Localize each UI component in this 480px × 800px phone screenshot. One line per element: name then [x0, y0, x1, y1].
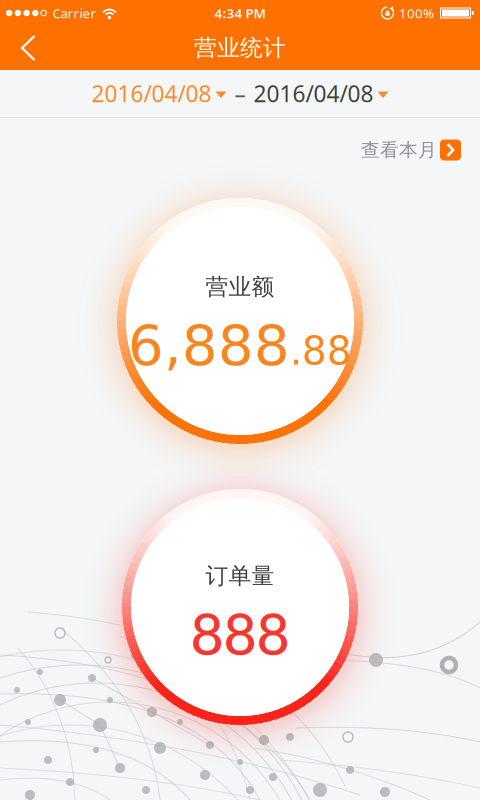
staticText: 营业额: [205, 273, 274, 301]
staticText: 4:34 PM: [214, 4, 265, 22]
staticText: Carrier: [52, 4, 96, 22]
button[interactable]: 查看本月: [361, 135, 480, 161]
button[interactable]: 2016/04/08: [91, 78, 226, 108]
button[interactable]: Back: [0, 26, 36, 69]
staticText: 100%: [399, 4, 434, 22]
staticText: 2016/04/08: [253, 78, 373, 108]
staticText: 6,888: [128, 312, 290, 378]
staticText: 2016/04/08: [91, 78, 211, 108]
staticText: –: [234, 78, 245, 108]
staticText: 查看本月: [361, 138, 437, 161]
staticText: .88: [290, 328, 352, 373]
button[interactable]: 2016/04/08: [253, 78, 388, 108]
staticText: 888: [190, 599, 289, 667]
staticText: 订单量: [205, 562, 274, 590]
staticText: 营业统计: [194, 34, 286, 62]
